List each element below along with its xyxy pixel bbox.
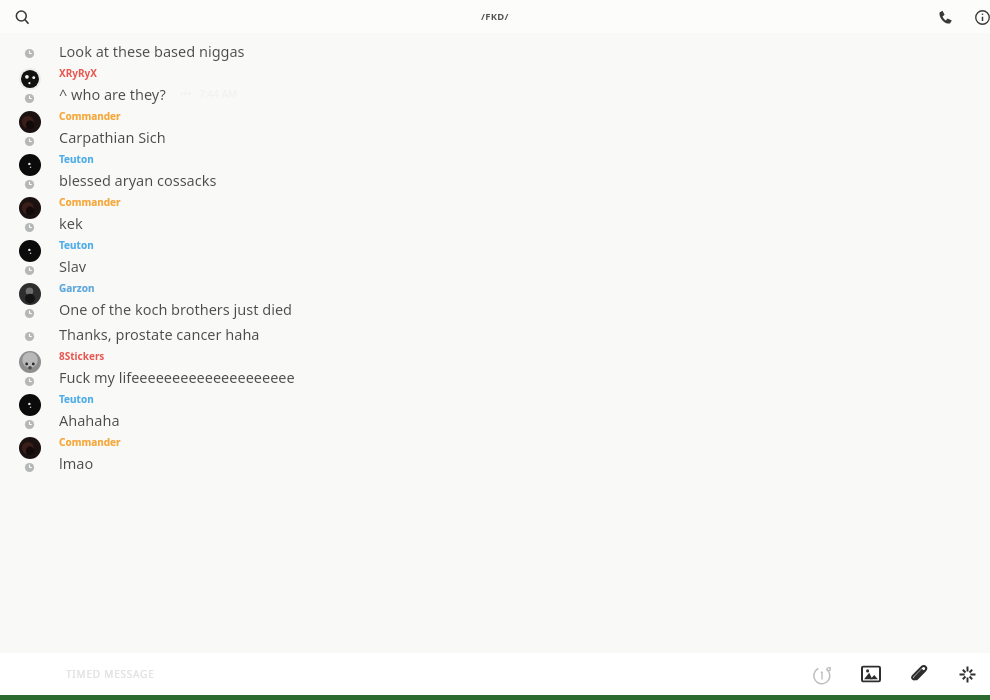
- staticText: Teuton: [59, 238, 94, 252]
- staticText: Fuck my lifeeeeeeeeeeeeeeeeeeee: [59, 367, 295, 387]
- button[interactable]: Commander: [0, 195, 990, 233]
- staticText: Thanks, prostate cancer haha: [59, 324, 260, 344]
- staticText: 8Stickers: [59, 349, 105, 363]
- staticText: One of the koch brothers just died: [59, 299, 292, 319]
- staticText: Teuton: [59, 152, 94, 166]
- button[interactable]: Send photo: [854, 657, 888, 691]
- button[interactable]: Attach file: [902, 657, 936, 691]
- button[interactable]: 8Stickers: [0, 349, 990, 387]
- staticText: blessed aryan cossacks: [59, 170, 217, 190]
- button[interactable]: Garzon: [0, 281, 990, 319]
- button[interactable]: Commander: [0, 435, 990, 473]
- button[interactable]: Search: [8, 3, 36, 31]
- staticText: Commander: [59, 195, 121, 209]
- staticText: Ahahaha: [59, 410, 120, 430]
- button[interactable]: Teuton: [0, 238, 990, 276]
- staticText: kek: [59, 213, 83, 233]
- staticText: Teuton: [59, 392, 94, 406]
- staticText: Commander: [59, 435, 121, 449]
- staticText: XRyRyX: [59, 66, 97, 80]
- staticText: Carpathian Sich: [59, 127, 166, 147]
- button[interactable]: Look at these based niggas: [0, 41, 990, 61]
- staticText: Look at these based niggas: [59, 41, 245, 61]
- button[interactable]: Effects: [950, 657, 984, 691]
- button[interactable]: XRyRyX: [0, 66, 990, 104]
- staticText: lmao: [59, 453, 94, 473]
- staticText: /FKD/: [481, 10, 509, 23]
- button[interactable]: Message timer, one day: [806, 657, 840, 691]
- button[interactable]: Teuton: [0, 392, 990, 430]
- staticText: Commander: [59, 109, 121, 123]
- button[interactable]: Info: [967, 2, 990, 32]
- button[interactable]: Teuton: [0, 152, 990, 190]
- staticText: Garzon: [59, 281, 95, 295]
- staticText: Slav: [59, 256, 87, 276]
- staticText: TIMED MESSAGE: [66, 667, 155, 681]
- button[interactable]: Commander: [0, 109, 990, 147]
- staticText: ^ who are they?: [59, 84, 166, 104]
- button[interactable]: Call: [930, 2, 960, 32]
- button[interactable]: Thanks, prostate cancer haha: [0, 324, 990, 344]
